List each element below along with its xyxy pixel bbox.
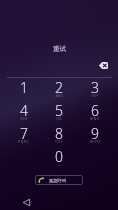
button[interactable]: 8 xyxy=(41,123,77,146)
button[interactable]: 1 xyxy=(6,77,41,100)
staticText: 5 xyxy=(55,101,63,120)
staticText: 紧急呼叫 xyxy=(49,178,67,183)
staticText: 4 xyxy=(20,101,28,120)
staticText: ABC xyxy=(55,93,64,98)
button[interactable]: Backspace xyxy=(96,58,110,72)
staticText: MNO xyxy=(90,116,100,121)
staticText: GHI xyxy=(20,116,28,121)
staticText: PQRS xyxy=(18,139,29,144)
button[interactable]: 6 xyxy=(77,100,113,123)
staticText: 3 xyxy=(91,78,99,97)
button[interactable]: 2 xyxy=(41,77,77,100)
button[interactable]: 3 xyxy=(77,77,113,100)
staticText: DEF xyxy=(91,93,99,98)
staticText: + xyxy=(58,162,61,167)
staticText: 6 xyxy=(91,101,99,120)
staticText: 重试 xyxy=(53,45,66,53)
staticText: 7 xyxy=(20,124,28,143)
button[interactable]: 紧急呼叫 xyxy=(35,175,83,185)
staticText: 2 xyxy=(55,78,63,97)
staticText: 1 xyxy=(20,78,28,97)
staticText: 8 xyxy=(55,124,63,143)
button[interactable]: 9 xyxy=(77,123,113,146)
staticText: WXYZ xyxy=(90,139,101,144)
button[interactable]: 7 xyxy=(6,123,41,146)
staticText: JKL xyxy=(56,116,63,121)
staticText: 9 xyxy=(91,124,99,143)
button[interactable]: 5 xyxy=(41,100,77,123)
button[interactable]: 0 xyxy=(41,146,77,169)
staticText: TUV xyxy=(55,139,63,144)
button[interactable]: 4 xyxy=(6,100,41,123)
button[interactable]: Back xyxy=(20,196,32,208)
staticText: 0 xyxy=(55,147,63,166)
